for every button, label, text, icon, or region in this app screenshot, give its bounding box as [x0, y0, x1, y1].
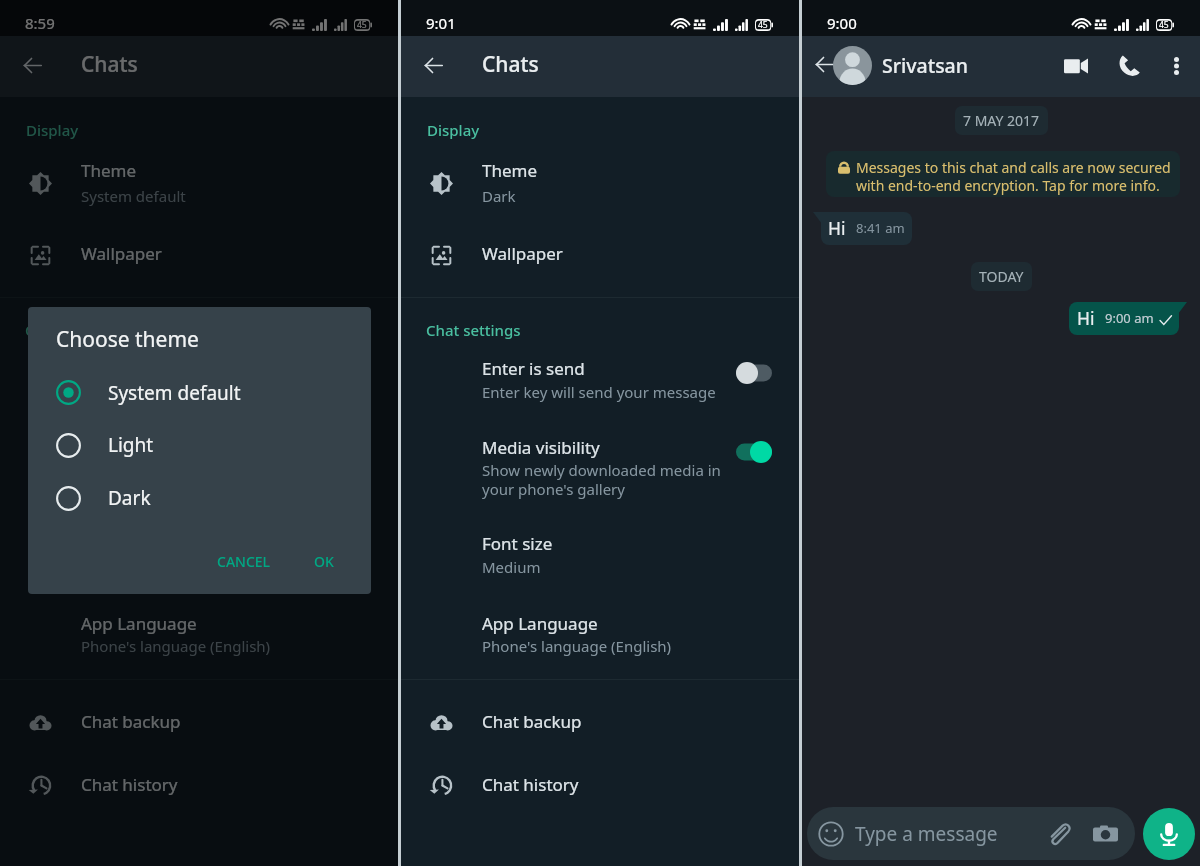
- staticText: Type a message: [855, 821, 1044, 847]
- staticText: Hi: [828, 216, 846, 239]
- button[interactable]: Voice call: [1109, 46, 1149, 86]
- staticText: Wallpaper: [81, 242, 162, 265]
- staticText: Chat backup: [81, 710, 181, 733]
- staticText: Chats: [482, 50, 539, 79]
- staticText: Theme: [482, 159, 538, 182]
- staticText: Font size: [482, 532, 553, 555]
- button[interactable]: Media visibility: [730, 435, 778, 469]
- button[interactable]: Enter is send: [730, 356, 778, 390]
- button[interactable]: Back: [807, 47, 841, 81]
- staticText: Srivatsan: [882, 52, 968, 79]
- staticText: Dark: [108, 485, 151, 511]
- button[interactable]: Profile photo: [833, 46, 872, 85]
- staticText: Chat history: [81, 773, 178, 796]
- button[interactable]: [401, 352, 799, 408]
- button[interactable]: 7 MAY 2017: [955, 106, 1048, 135]
- staticText: 9:01: [426, 13, 456, 33]
- button[interactable]: Messages to this chat and calls are now …: [826, 151, 1180, 197]
- staticText: CANCEL: [217, 552, 271, 571]
- button[interactable]: Hi: [1069, 302, 1179, 335]
- button[interactable]: TODAY: [971, 262, 1032, 291]
- button[interactable]: Camera: [1090, 819, 1120, 849]
- button[interactable]: Video call: [1056, 46, 1096, 86]
- button[interactable]: [0, 764, 398, 808]
- button[interactable]: [0, 232, 398, 276]
- staticText: 9:00: [827, 13, 857, 33]
- staticText: Chat history: [482, 773, 579, 796]
- staticText: Dark: [482, 186, 516, 206]
- staticText: 7 MAY 2017: [963, 111, 1040, 130]
- button[interactable]: Choose theme: [28, 307, 371, 594]
- staticText: 8:59: [25, 13, 55, 33]
- staticText: Chat backup: [482, 710, 582, 733]
- staticText: 45: [357, 19, 367, 31]
- staticText: Enter key will send your message: [482, 382, 716, 402]
- staticText: Hi: [1077, 306, 1095, 329]
- button[interactable]: [28, 367, 371, 419]
- button[interactable]: OK: [304, 542, 344, 580]
- staticText: 45: [1159, 19, 1169, 31]
- staticText: System default: [108, 380, 241, 406]
- button[interactable]: [401, 527, 799, 583]
- staticText: App Language: [482, 612, 598, 635]
- staticText: Phone's language (English): [81, 636, 271, 656]
- staticText: Theme: [81, 159, 137, 182]
- button[interactable]: Back: [12, 45, 52, 85]
- button[interactable]: [401, 152, 799, 210]
- button[interactable]: [0, 152, 398, 210]
- button[interactable]: [0, 527, 398, 583]
- button[interactable]: Attach: [1044, 819, 1074, 849]
- staticText: Wallpaper: [482, 242, 563, 265]
- button[interactable]: Enter is send: [329, 356, 377, 390]
- staticText: Media visibility: [482, 436, 600, 459]
- button[interactable]: Back: [413, 45, 453, 85]
- button[interactable]: [401, 232, 799, 276]
- button[interactable]: Hi: [821, 212, 912, 245]
- button[interactable]: [28, 420, 371, 472]
- button[interactable]: [0, 607, 398, 663]
- staticText: Chat settings: [25, 320, 120, 340]
- button[interactable]: More options: [1156, 46, 1196, 86]
- button[interactable]: [0, 352, 398, 408]
- staticText: Messages to this chat and calls are now …: [856, 158, 1171, 195]
- button[interactable]: Record voice message: [1143, 808, 1195, 860]
- staticText: 8:41 am: [856, 219, 905, 237]
- staticText: Enter key will send your message: [81, 382, 315, 402]
- button[interactable]: Media visibility: [329, 435, 377, 469]
- button[interactable]: CANCEL: [207, 542, 281, 580]
- staticText: Show newly downloaded media in your phon…: [81, 460, 320, 500]
- staticText: Phone's language (English): [482, 636, 672, 656]
- button[interactable]: [0, 701, 398, 745]
- staticText: TODAY: [979, 267, 1024, 286]
- staticText: 9:00 am: [1105, 309, 1154, 327]
- staticText: Enter is send: [482, 357, 585, 380]
- staticText: Chat settings: [426, 320, 521, 340]
- button[interactable]: [401, 701, 799, 745]
- staticText: Chats: [81, 50, 138, 79]
- button[interactable]: [401, 430, 799, 508]
- staticText: Display: [427, 120, 480, 140]
- staticText: Medium: [482, 557, 541, 577]
- staticText: Show newly downloaded media in your phon…: [482, 460, 721, 500]
- button[interactable]: [401, 764, 799, 808]
- staticText: Media visibility: [81, 436, 199, 459]
- staticText: System default: [81, 186, 186, 206]
- staticText: Light: [108, 432, 154, 458]
- staticText: Choose theme: [56, 325, 199, 354]
- button[interactable]: [0, 430, 398, 508]
- staticText: OK: [314, 552, 334, 571]
- button[interactable]: Type a message: [807, 807, 1135, 860]
- staticText: App Language: [81, 612, 197, 635]
- button[interactable]: [28, 473, 371, 525]
- staticText: 45: [758, 19, 768, 31]
- staticText: Display: [26, 120, 79, 140]
- button[interactable]: [401, 607, 799, 663]
